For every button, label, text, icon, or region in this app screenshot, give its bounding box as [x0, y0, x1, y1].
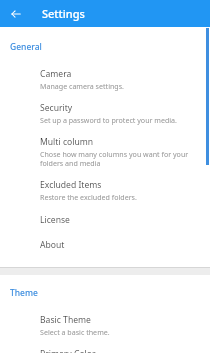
staticText: Primary Color	[40, 348, 96, 353]
button[interactable]: Multi column	[0, 127, 210, 170]
button[interactable]: Security	[0, 93, 210, 127]
staticText: Restore the excluded folders.	[40, 192, 137, 202]
staticText: Camera	[40, 68, 72, 80]
staticText: License	[40, 214, 70, 226]
staticText: Multi column	[40, 136, 94, 148]
staticText: Manage camera settings.	[40, 81, 125, 91]
staticText: Excluded Items	[40, 179, 102, 191]
staticText: About	[40, 239, 65, 251]
button[interactable]: About	[0, 229, 210, 254]
staticText: Security	[40, 102, 73, 114]
staticText: Set up a password to protect your media.	[40, 115, 177, 125]
staticText: Settings	[42, 6, 85, 21]
button[interactable]: License	[0, 204, 210, 229]
staticText: Select a basic theme.	[40, 327, 110, 337]
button[interactable]: Camera	[0, 59, 210, 93]
staticText: Basic Theme	[40, 314, 91, 326]
staticText: General	[10, 41, 42, 53]
staticText: Theme	[10, 287, 38, 299]
button[interactable]: Primary Color	[0, 339, 210, 355]
button[interactable]: Excluded Items	[0, 170, 210, 204]
button[interactable]: Back	[8, 6, 24, 22]
button[interactable]: Basic Theme	[0, 305, 210, 339]
staticText: Chose how many columns you want for your…	[40, 149, 198, 168]
